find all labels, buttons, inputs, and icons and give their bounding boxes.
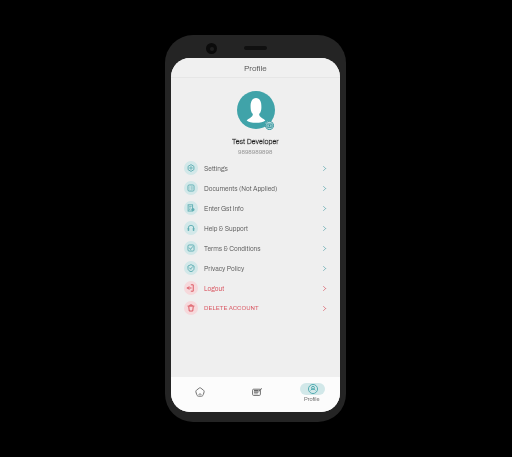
staticText: Profile bbox=[244, 64, 267, 73]
staticText: Documents (Not Applied) bbox=[204, 185, 278, 192]
staticText: Help & Support bbox=[204, 225, 248, 232]
staticText: DELETE ACCOUNT bbox=[204, 305, 259, 312]
button[interactable]: Privacy Policy bbox=[171, 258, 340, 278]
button[interactable]: Profile bbox=[284, 385, 340, 404]
staticText: Privacy Policy bbox=[204, 265, 245, 272]
button[interactable]: Logout bbox=[171, 278, 340, 298]
button[interactable]: Enter Gst Info bbox=[171, 198, 340, 218]
staticText: Profile bbox=[304, 396, 320, 402]
staticText: Enter Gst Info bbox=[204, 205, 244, 212]
button[interactable]: Documents (Not Applied) bbox=[171, 178, 340, 198]
button[interactable]: Home bbox=[171, 388, 228, 402]
button[interactable]: Settings bbox=[171, 158, 340, 178]
staticText: 9898989898 bbox=[238, 149, 273, 156]
button[interactable]: DELETE ACCOUNT bbox=[171, 298, 340, 318]
button[interactable]: Orders bbox=[228, 388, 284, 402]
staticText: Terms & Conditions bbox=[204, 245, 261, 252]
button[interactable]: Terms & Conditions bbox=[171, 238, 340, 258]
staticText: Settings bbox=[204, 165, 228, 172]
staticText: Test Developer bbox=[232, 138, 279, 146]
staticText: Logout bbox=[204, 285, 225, 292]
button[interactable]: Help & Support bbox=[171, 218, 340, 238]
